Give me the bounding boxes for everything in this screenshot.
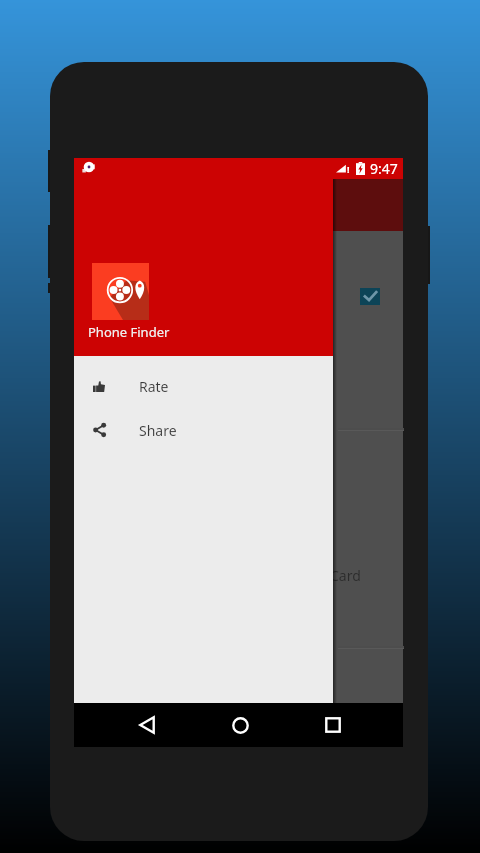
- button[interactable]: Recent apps: [303, 706, 363, 744]
- staticText: 9:47: [370, 159, 398, 178]
- staticText: Card: [330, 566, 361, 585]
- staticText: !: [347, 163, 350, 175]
- button[interactable]: Share: [74, 408, 333, 452]
- staticText: Rate: [139, 377, 169, 396]
- button[interactable]: Back: [117, 706, 177, 744]
- button[interactable]: Home: [210, 706, 270, 744]
- staticText: Share: [139, 421, 177, 440]
- button[interactable]: Rate: [74, 364, 333, 408]
- staticText: Phone Finder: [88, 323, 170, 341]
